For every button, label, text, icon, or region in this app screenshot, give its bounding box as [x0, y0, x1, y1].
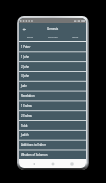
button[interactable]: Judith: [19, 130, 86, 140]
button[interactable]: Jude: [19, 81, 86, 91]
staticText: Jude: [21, 84, 27, 88]
staticText: BOOK: [27, 36, 34, 39]
button[interactable]: Home: [48, 159, 57, 168]
button[interactable]: CHAPTER: [42, 34, 64, 41]
button[interactable]: 3 John: [19, 71, 86, 81]
button[interactable]: Additions to Esther: [19, 140, 86, 150]
staticText: Wisdom of Solomon: [21, 153, 48, 157]
button[interactable]: VERSE: [64, 34, 86, 41]
button[interactable]: Tobit: [19, 121, 86, 131]
staticText: 2 Esdras: [21, 114, 32, 118]
button[interactable]: BOOK: [19, 34, 42, 41]
button[interactable]: Wisdom of Solomon: [19, 150, 86, 160]
button[interactable]: Revelation: [19, 91, 86, 101]
button[interactable]: Recent apps: [67, 159, 76, 168]
staticText: CHAPTER: [48, 36, 58, 39]
button[interactable]: 1 Esdras: [19, 101, 86, 111]
staticText: Additions to Esther: [21, 143, 46, 147]
button[interactable]: 2 Esdras: [19, 111, 86, 121]
button[interactable]: 1 John: [19, 52, 86, 62]
staticText: 3 John: [21, 74, 30, 78]
button[interactable]: 2 John: [19, 62, 86, 72]
staticText: Tobit: [21, 124, 28, 128]
staticText: Judith: [21, 133, 29, 137]
staticText: 1 John: [21, 55, 30, 59]
staticText: Revelation: [21, 94, 35, 98]
staticText: 1 Peter: [21, 45, 31, 49]
staticText: 1 Esdras: [21, 104, 32, 108]
button[interactable]: Back: [29, 159, 38, 168]
button[interactable]: Navigate up: [19, 24, 29, 34]
staticText: 2 John: [21, 65, 30, 69]
staticText: VERSE: [72, 36, 79, 39]
button[interactable]: 1 Peter: [19, 42, 86, 52]
staticText: Genesis: [47, 27, 59, 31]
